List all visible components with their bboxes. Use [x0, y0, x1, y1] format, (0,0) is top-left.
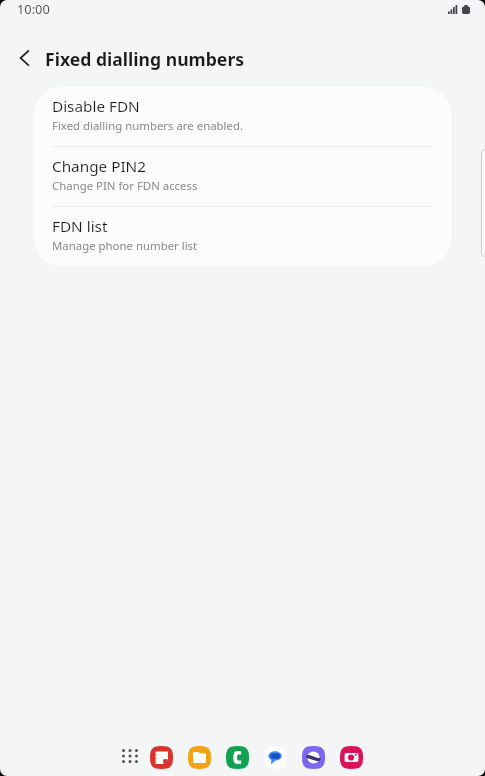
button[interactable]: Navigate up [6, 40, 42, 76]
staticText: Change PIN2 [52, 156, 146, 177]
button[interactable]: Disable FDN [34, 87, 451, 146]
staticText: 10:00 [17, 0, 50, 17]
button[interactable]: FDN list [34, 207, 451, 266]
staticText: Change PIN for FDN access [52, 178, 198, 194]
button[interactable]: Camera [340, 746, 363, 769]
staticText: Fixed dialling numbers [45, 47, 245, 71]
button[interactable]: Edge panel handle [482, 150, 485, 256]
staticText: Manage phone number list [52, 238, 198, 254]
button[interactable]: Internet [302, 746, 325, 769]
button[interactable]: Phone [226, 746, 249, 769]
button[interactable]: Change PIN2 [34, 147, 451, 206]
button[interactable]: My Files [188, 746, 211, 769]
button[interactable]: Apps list [118, 744, 142, 768]
button[interactable]: Messages [264, 746, 287, 769]
staticText: Fixed dialling numbers are enabled. [52, 118, 244, 134]
staticText: Disable FDN [52, 96, 140, 117]
staticText: FDN list [52, 216, 108, 237]
button[interactable]: Samsung Notes [150, 746, 173, 769]
